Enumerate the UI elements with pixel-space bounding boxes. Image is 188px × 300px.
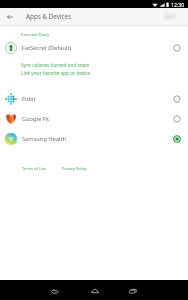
staticText: FatSecret (Default)	[22, 44, 72, 52]
button[interactable]: Fitbit	[0, 89, 188, 109]
button[interactable]: Samsung Health	[0, 129, 188, 149]
button[interactable]: Save	[164, 12, 176, 20]
button[interactable]: Back	[3, 10, 16, 23]
button[interactable]: Privacy Policy	[62, 166, 87, 171]
staticText: Sync calories burned and steps	[21, 62, 90, 68]
staticText: Samsung Health	[22, 135, 67, 143]
staticText: Fitbit	[22, 95, 36, 103]
staticText: Link your favorite app or device	[21, 70, 91, 76]
button[interactable]: Google Fit	[0, 109, 188, 129]
button[interactable]: Recent apps	[125, 283, 140, 298]
staticText: Apps & Devices	[26, 12, 72, 21]
staticText: Exercise Diary	[21, 31, 50, 37]
button[interactable]: Back	[47, 283, 62, 298]
button[interactable]: FatSecret (Default)	[0, 38, 188, 58]
button[interactable]: Terms of Use	[22, 166, 46, 171]
staticText: 12:30	[171, 1, 185, 8]
button[interactable]: Exercise Diary	[21, 31, 50, 37]
button[interactable]: Home	[87, 283, 102, 298]
staticText: SAVE	[165, 14, 175, 19]
staticText: Google Fit	[22, 115, 50, 123]
